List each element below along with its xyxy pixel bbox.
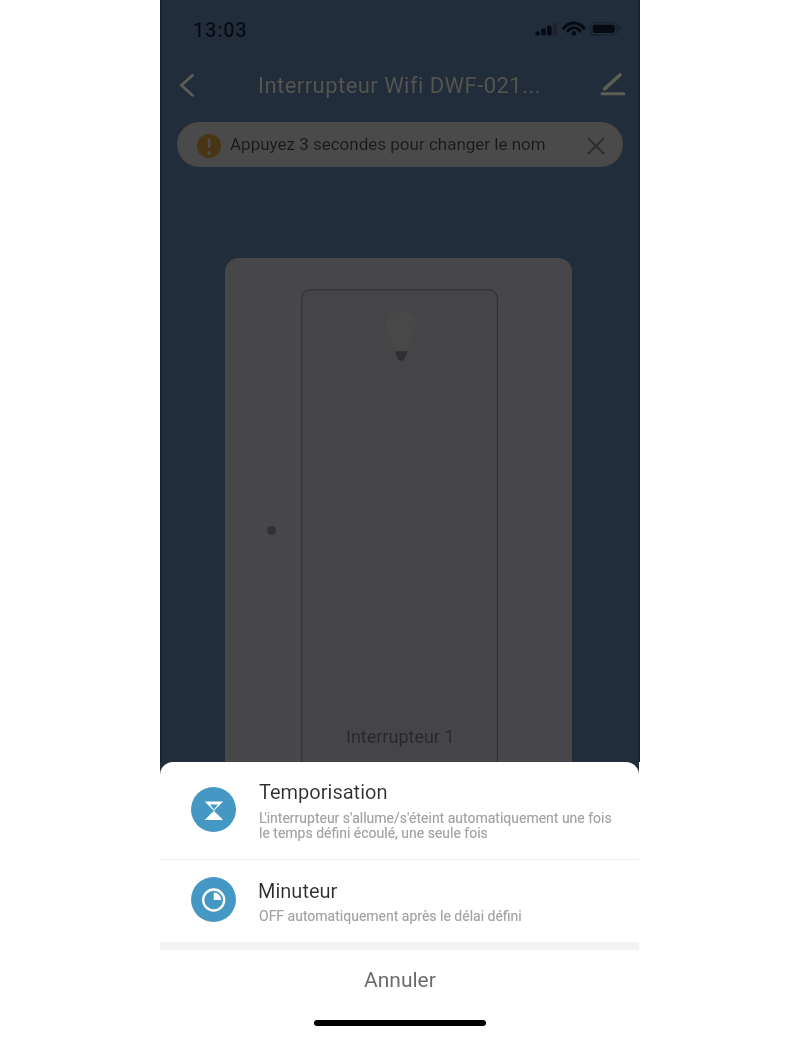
staticText: Minuteur <box>258 879 338 902</box>
staticText: Interrupteur 1 <box>346 726 455 747</box>
button[interactable]: Minuteur <box>191 877 236 922</box>
staticText: L'interrupteur s'allume/s'éteint automat… <box>259 810 612 842</box>
button[interactable]: Rename <box>580 62 624 106</box>
button[interactable]: Appuyez 3 secondes pour changer le nom <box>177 122 623 167</box>
staticText: Appuyez 3 secondes pour changer le nom <box>230 134 546 154</box>
staticText: OFF automatiquement après le délai défin… <box>259 908 522 924</box>
button[interactable]: Temporisation <box>191 787 236 832</box>
staticText: Annuler <box>364 968 436 993</box>
staticText: 13:03 <box>193 18 248 41</box>
button[interactable]: Dismiss <box>579 129 613 163</box>
button[interactable]: Back <box>165 63 209 107</box>
button[interactable] <box>160 859 639 942</box>
button[interactable] <box>160 762 639 858</box>
staticText: Interrupteur Wifi DWF-021... <box>258 73 541 99</box>
button[interactable]: Annuler <box>160 950 639 1011</box>
staticText: Temporisation <box>259 780 388 803</box>
